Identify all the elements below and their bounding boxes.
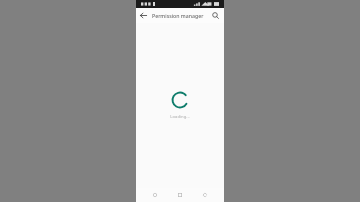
button[interactable]: Back [149, 189, 161, 201]
staticText: Loading... [170, 114, 190, 120]
button[interactable]: Search [210, 10, 221, 21]
button[interactable]: Back [138, 10, 149, 21]
staticText: Permission manager [152, 12, 204, 19]
button[interactable]: Recent apps [199, 189, 211, 201]
button[interactable]: Home [174, 189, 186, 201]
